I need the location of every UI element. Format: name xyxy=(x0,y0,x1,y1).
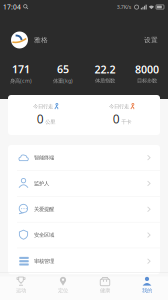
button[interactable]: 安全区域 xyxy=(8,222,160,248)
staticText: 今日行走 xyxy=(109,103,129,110)
staticText: 今日行走 xyxy=(33,103,53,110)
button[interactable]: 雅格 xyxy=(0,31,54,49)
staticText: 监护人 xyxy=(34,180,49,187)
staticText: 千卡 xyxy=(121,119,131,125)
staticText: 目标步数 xyxy=(137,77,157,84)
staticText: 0 xyxy=(113,111,120,127)
button[interactable]: 健康 xyxy=(84,274,126,296)
button[interactable]: 审核管理 xyxy=(8,248,160,274)
staticText: 关爱提醒 xyxy=(34,206,54,213)
staticText: 体重(kg) xyxy=(53,77,73,84)
staticText: 8000 xyxy=(135,62,159,76)
button[interactable]: 我的 xyxy=(126,274,168,296)
staticText: 22.2 xyxy=(94,62,115,76)
staticText: 我的 xyxy=(142,287,152,294)
button[interactable]: 监护人 xyxy=(8,171,160,197)
staticText: 17:04 xyxy=(3,3,21,11)
staticText: 171 xyxy=(12,62,30,76)
staticText: 0 xyxy=(37,111,44,127)
staticText: 安全区域 xyxy=(34,232,54,238)
button[interactable]: 关爱提醒 xyxy=(8,197,160,222)
staticText: 65 xyxy=(57,62,69,76)
staticText: 3.7K/s xyxy=(117,3,132,11)
button[interactable]: 定位 xyxy=(42,274,84,296)
button[interactable]: 运动 xyxy=(0,274,42,296)
button[interactable]: 设置 xyxy=(134,31,168,49)
staticText: 雅格 xyxy=(34,36,48,44)
staticText: 身高(cm) xyxy=(10,77,32,84)
staticText: 运动 xyxy=(16,287,26,294)
button[interactable]: 智能终端 xyxy=(8,145,160,171)
staticText: 智能终端 xyxy=(34,154,54,161)
staticText: 设置 xyxy=(144,36,158,44)
staticText: 体质指数 xyxy=(95,77,115,84)
staticText: 健康 xyxy=(100,287,110,294)
staticText: 公里 xyxy=(45,119,55,125)
staticText: 审核管理 xyxy=(34,258,54,264)
staticText: 定位 xyxy=(58,287,68,294)
